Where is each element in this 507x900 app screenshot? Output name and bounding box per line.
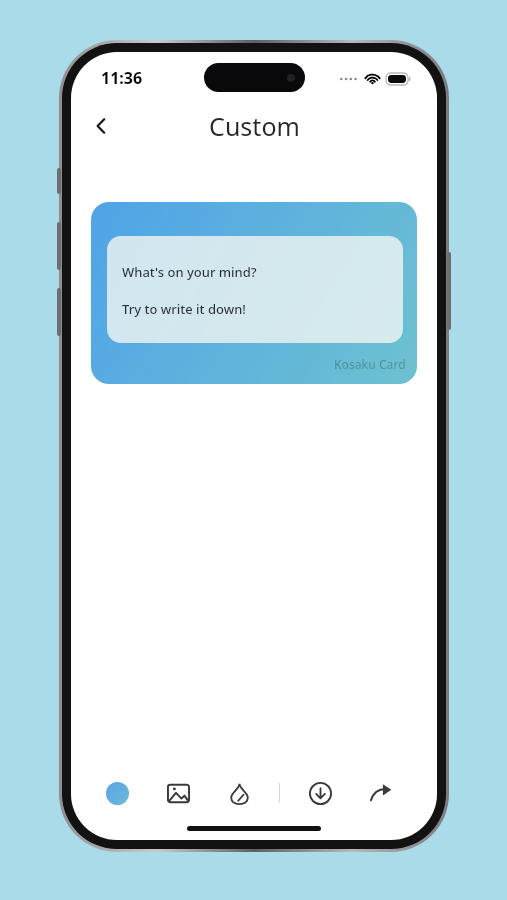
- button[interactable]: Color: [97, 773, 137, 813]
- button[interactable]: Image: [158, 773, 198, 813]
- staticText: 11:36: [101, 67, 143, 89]
- button[interactable]: Download: [300, 773, 340, 813]
- staticText: Try to write it down!: [122, 300, 246, 318]
- staticText: Custom: [209, 109, 300, 143]
- button[interactable]: Back: [79, 104, 123, 148]
- staticText: What's on your mind?: [122, 263, 257, 281]
- button[interactable]: Share: [361, 773, 401, 813]
- button[interactable]: What's on your mind?: [91, 202, 417, 384]
- staticText: Kosaku Card: [334, 356, 406, 372]
- button[interactable]: Opacity: [219, 773, 259, 813]
